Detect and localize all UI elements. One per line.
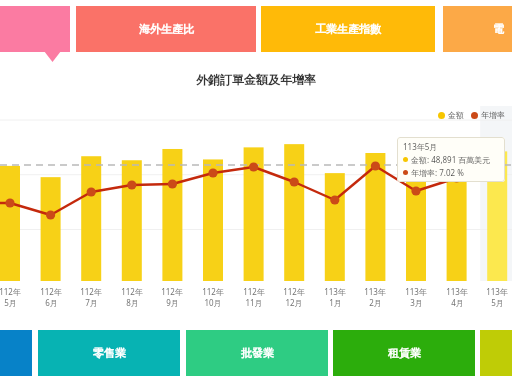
staticText: 5月 [491, 297, 504, 308]
staticText: 8月 [126, 297, 139, 308]
button[interactable]: 工業生產指數 [261, 6, 435, 52]
staticText: 112年 [202, 286, 224, 297]
staticText: 113年5月 [403, 141, 438, 152]
staticText: 112年 [80, 286, 102, 297]
staticText: 112年 [40, 286, 62, 297]
button[interactable]: 零售業 [38, 330, 180, 376]
staticText: 年增率 [481, 110, 505, 120]
staticText: 2月 [369, 297, 382, 308]
staticText: 3月 [410, 297, 423, 308]
staticText: 外銷訂單金額及年增率 [196, 72, 316, 87]
staticText: 5月 [4, 297, 17, 308]
button[interactable]: 批發業 [186, 330, 328, 376]
staticText: 112年 [121, 286, 143, 297]
staticText: 113年 [405, 286, 427, 297]
staticText: 112年 [283, 286, 305, 297]
staticText: 113年 [486, 286, 508, 297]
staticText: 零售業 [93, 346, 126, 360]
staticText: 4月 [451, 297, 464, 308]
staticText: 工業生產指數 [315, 22, 381, 36]
staticText: 金額 [448, 110, 464, 120]
staticText: 租賃業 [388, 346, 421, 360]
staticText: 金額: 48,891 百萬美元 [411, 154, 491, 165]
staticText: 9月 [166, 297, 179, 308]
staticText: 113年 [364, 286, 386, 297]
staticText: 113年 [446, 286, 468, 297]
staticText: 6月 [45, 297, 58, 308]
staticText: 11月 [245, 297, 263, 308]
button[interactable]: 租賃業 [333, 330, 475, 376]
button[interactable]: 電 [443, 6, 512, 52]
staticText: 112年 [0, 286, 21, 297]
staticText: 112年 [243, 286, 265, 297]
staticText: 7月 [85, 297, 98, 308]
staticText: 1月 [329, 297, 342, 308]
staticText: 海外生產比 [139, 22, 194, 36]
staticText: 10月 [204, 297, 222, 308]
staticText: 112年 [161, 286, 183, 297]
staticText: 年增率: 7.02 % [411, 167, 464, 178]
staticText: 113年 [324, 286, 346, 297]
staticText: 12月 [285, 297, 303, 308]
staticText: 電 [493, 22, 504, 36]
staticText: 批發業 [241, 346, 274, 360]
button[interactable]: 海外生產比 [76, 6, 256, 52]
